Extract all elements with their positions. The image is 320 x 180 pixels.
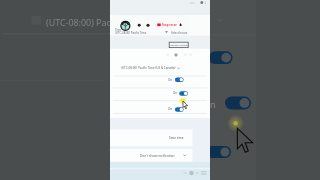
button[interactable]: Time zone: (UTC-08:00) Pacific Time (US … — [113, 62, 207, 76]
button[interactable]: Toggle setting — [210, 146, 231, 158]
button[interactable]: Notifications, on — [113, 88, 207, 100]
button[interactable]: System tray — [180, 168, 210, 179]
button[interactable]: Stop recording — [154, 21, 184, 28]
staticText: Time — [115, 28, 121, 32]
staticText: Don't show notification — [140, 154, 175, 158]
staticText: On — [168, 107, 173, 111]
staticText: Save time — [169, 136, 184, 140]
staticText: Select hours — [171, 31, 188, 35]
button[interactable]: Save time — [110, 129, 193, 146]
staticText: On — [173, 91, 178, 95]
button[interactable]: Don't show notification reminder — [110, 149, 193, 162]
staticText: On — [168, 78, 173, 82]
staticText: Update settings — [170, 43, 189, 46]
staticText: (UTC-08:00) Pacific Time — [115, 31, 147, 35]
button[interactable]: Toggle setting — [209, 51, 233, 64]
staticText: n — [210, 98, 216, 110]
staticText: (UTC-08:00) Pac — [46, 16, 111, 28]
button[interactable]: Reminders, on — [113, 101, 207, 113]
staticText: Stop recor — [162, 23, 177, 27]
button[interactable]: Toggle setting — [225, 97, 251, 110]
button[interactable]: Screen recorder toolbar — [111, 15, 190, 35]
staticText: (UTC-08:00) Pacific Time (US & Canada) — [121, 66, 176, 70]
button[interactable]: Update settings — [169, 42, 188, 47]
button[interactable]: Working hours, on — [113, 76, 207, 87]
